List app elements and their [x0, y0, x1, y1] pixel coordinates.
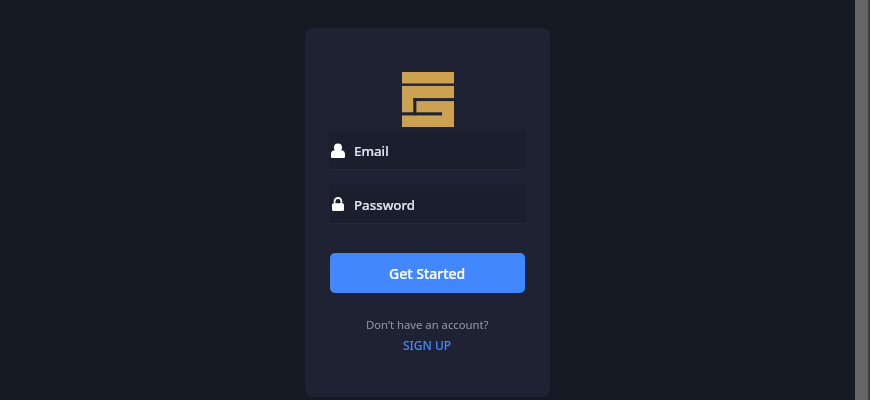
staticText: Don’t have an account? [366, 317, 489, 332]
staticText: Password [354, 196, 416, 214]
button[interactable]: Password [329, 185, 526, 223]
staticText: SIGN UP [403, 337, 452, 353]
staticText: Email [354, 142, 389, 160]
other: Password [331, 197, 345, 212]
button[interactable]: SIGN UP [397, 335, 458, 355]
button[interactable]: Email [329, 131, 526, 169]
other: Email [331, 143, 345, 158]
button[interactable]: Get Started [330, 253, 525, 293]
staticText: Get Started [389, 264, 466, 283]
